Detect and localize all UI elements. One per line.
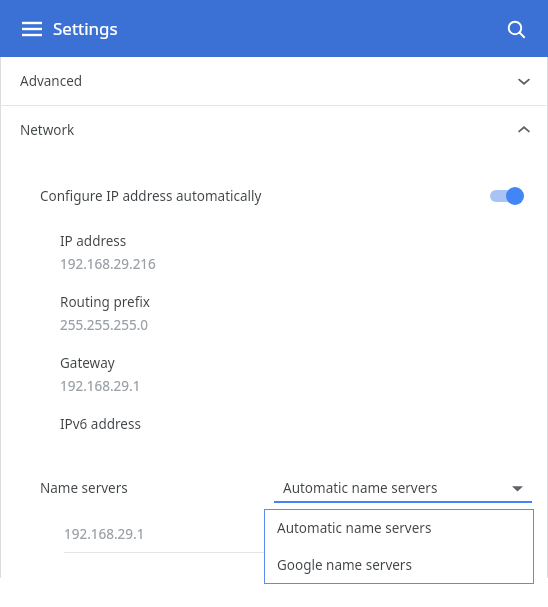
button[interactable]: Configure IP address automatically <box>0 180 548 212</box>
button[interactable]: Automatic name servers <box>274 473 532 503</box>
staticText: Network <box>20 121 75 139</box>
button[interactable]: Search <box>497 10 535 48</box>
button[interactable]: Advanced <box>0 57 548 105</box>
button[interactable]: Network <box>0 106 548 154</box>
staticText: 192.168.29.1 <box>64 525 145 543</box>
staticText: 192.168.29.216 <box>60 255 156 273</box>
button[interactable]: Automatic name servers <box>264 509 534 546</box>
staticText: IP address <box>60 232 127 250</box>
staticText: Advanced <box>20 72 83 90</box>
staticText: Name servers <box>40 479 128 497</box>
staticText: Settings <box>53 17 118 40</box>
staticText: Routing prefix <box>60 293 150 311</box>
staticText: Automatic name servers <box>283 479 438 497</box>
staticText: Configure IP address automatically <box>40 187 262 205</box>
staticText: Automatic name servers <box>277 519 432 537</box>
staticText: 255.255.255.0 <box>60 316 149 334</box>
button[interactable]: Google name servers <box>264 546 534 583</box>
staticText: 192.168.29.1 <box>60 377 141 395</box>
staticText: Google name servers <box>277 556 412 574</box>
staticText: Gateway <box>60 354 115 372</box>
button[interactable]: Open navigation menu <box>14 11 50 47</box>
staticText: IPv6 address <box>60 415 141 433</box>
